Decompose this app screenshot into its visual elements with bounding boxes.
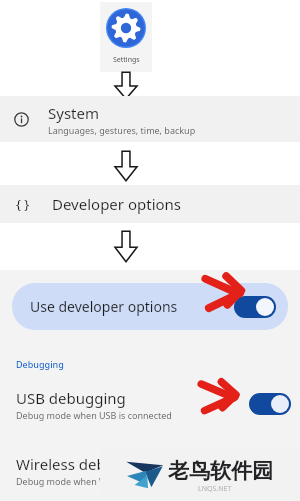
button[interactable]: USB debugging toggle, on: [249, 393, 291, 415]
staticText: Debug mode when Wi-Fi: [16, 475, 120, 487]
button[interactable]: Settings app: [100, 2, 152, 72]
button[interactable]: Debugging: [16, 358, 64, 370]
staticText: Debug mode when USB is connected: [16, 409, 172, 421]
button[interactable]: USB debugging: [0, 382, 300, 426]
staticText: { }: [16, 195, 30, 213]
staticText: LNQS.NET: [198, 484, 232, 494]
staticText: Settings: [113, 55, 140, 65]
staticText: Languages, gestures, time, backup: [48, 124, 196, 136]
staticText: Use developer options: [30, 297, 178, 316]
button[interactable]: { }: [0, 185, 300, 223]
button[interactable]: Wireless debugging: [0, 448, 300, 492]
button[interactable]: System: [0, 96, 300, 142]
staticText: System: [48, 103, 99, 123]
button[interactable]: Use developer options: [12, 283, 288, 330]
staticText: Wireless debugging: [16, 454, 156, 474]
button[interactable]: Use developer options toggle, on: [234, 296, 276, 318]
staticText: Developer options: [52, 194, 182, 214]
staticText: USB debugging: [16, 388, 126, 408]
staticText: 老鸟软件园: [168, 458, 273, 484]
